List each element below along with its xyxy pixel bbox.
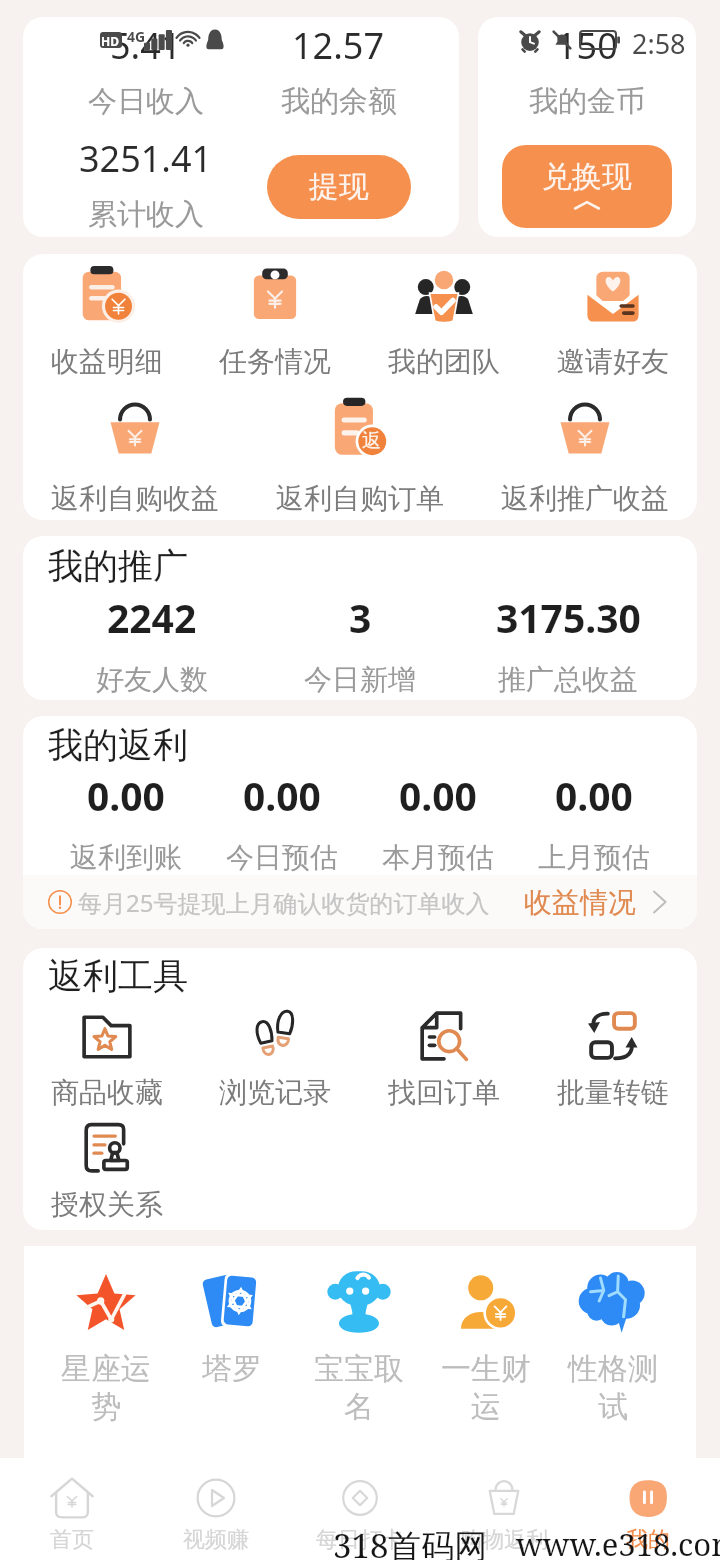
staticText: 我的推广 xyxy=(48,544,188,588)
staticText: 我的 xyxy=(626,1526,670,1554)
button[interactable]: 批量转链 xyxy=(528,1010,697,1110)
button[interactable]: 塔罗 xyxy=(169,1268,295,1388)
staticText: 今日新增 xyxy=(304,662,416,697)
button[interactable]: 我的 xyxy=(576,1458,720,1554)
staticText: 找回订单 xyxy=(388,1075,500,1110)
staticText: 返利自购订单 xyxy=(276,481,444,516)
staticText: 返利工具 xyxy=(48,954,188,998)
other: 购物返利 xyxy=(483,1477,525,1519)
button[interactable]: 性格测试 xyxy=(549,1268,676,1426)
button[interactable]: 邀请好友 xyxy=(528,264,697,379)
staticText: 性格测试 xyxy=(566,1350,660,1426)
staticText: 12.57 xyxy=(292,21,385,70)
staticText: 视频赚 xyxy=(183,1526,249,1554)
staticText: 累计收入 xyxy=(88,196,204,233)
staticText: 推广总收益 xyxy=(498,662,638,697)
staticText: 返 xyxy=(362,429,382,453)
staticText: 返利到账 xyxy=(70,840,182,875)
staticText: 批量转链 xyxy=(557,1075,669,1110)
other: 视频赚 xyxy=(196,1478,236,1518)
staticText: 0.00 xyxy=(243,769,321,822)
staticText: 一生财运 xyxy=(439,1350,533,1426)
staticText: 任务情况 xyxy=(219,344,331,379)
staticText: 318首码网 xyxy=(333,1523,488,1560)
staticText: 今日收入 xyxy=(88,83,204,120)
button[interactable]: 提现 xyxy=(267,155,411,219)
staticText: 5.41 xyxy=(110,21,182,70)
staticText: 我的团队 xyxy=(388,344,500,379)
button[interactable]: 星座运势 xyxy=(43,1268,169,1426)
staticText: 好友人数 xyxy=(96,662,208,697)
button[interactable]: 一生财运 xyxy=(422,1268,549,1426)
button[interactable]: 授权关系 xyxy=(23,1122,191,1222)
button[interactable]: 视频赚 xyxy=(144,1458,288,1554)
staticText: 0.00 xyxy=(87,769,165,822)
staticText: 150 xyxy=(556,21,618,70)
staticText: www.e318.com xyxy=(516,1523,720,1560)
button[interactable]: 150 xyxy=(478,17,696,237)
button[interactable]: 返利推广收益 xyxy=(472,395,697,516)
staticText: 购物返利 xyxy=(460,1526,548,1554)
staticText: 邀请好友 xyxy=(557,344,669,379)
staticText: 今日预估 xyxy=(226,840,338,875)
staticText: 2:58 xyxy=(632,25,686,62)
staticText: 3251.41 xyxy=(79,134,213,183)
button[interactable]: 找回订单 xyxy=(359,1010,528,1110)
staticText: 0.00 xyxy=(399,769,477,822)
staticText: 宝宝取名 xyxy=(312,1350,406,1426)
staticText: 2242 xyxy=(107,591,197,644)
staticText: 提现 xyxy=(309,168,369,206)
button[interactable]: 每日打卡 xyxy=(288,1458,432,1554)
staticText: 我的返利 xyxy=(48,723,188,767)
button[interactable]: 商品收藏 xyxy=(23,1010,191,1110)
button[interactable]: 任务情况 xyxy=(191,264,359,379)
button[interactable]: 宝宝取名 xyxy=(295,1268,422,1426)
staticText: 塔罗 xyxy=(185,1350,279,1388)
staticText: 每日打卡 xyxy=(316,1526,404,1554)
staticText: 上月预估 xyxy=(538,840,650,875)
staticText: 首页 xyxy=(50,1526,94,1554)
button[interactable]: 我的团队 xyxy=(359,264,528,379)
button[interactable]: 浏览记录 xyxy=(191,1010,359,1110)
other: 每日打卡 xyxy=(340,1478,380,1518)
staticText: 4G xyxy=(127,27,146,46)
staticText: 浏览记录 xyxy=(219,1075,331,1110)
button[interactable]: 首页 xyxy=(0,1458,144,1554)
button[interactable]: 每月25号提现上月确认收货的订单收入 xyxy=(48,875,670,929)
other: 首页 xyxy=(50,1476,94,1520)
button[interactable]: 购物返利 xyxy=(432,1458,576,1554)
staticText: 返利推广收益 xyxy=(501,481,669,516)
staticText: 我的余额 xyxy=(281,83,397,120)
staticText: 授权关系 xyxy=(51,1187,163,1222)
staticText: 我的金币 xyxy=(529,83,645,120)
button[interactable]: 返 xyxy=(247,395,472,516)
staticText: 3 xyxy=(349,591,372,644)
staticText: HD xyxy=(101,33,119,49)
staticText: 每月25号提现上月确认收货的订单收入 xyxy=(78,886,490,919)
staticText: 返利自购收益 xyxy=(51,481,219,516)
staticText: 兑换现 xyxy=(542,158,632,196)
button[interactable]: 收益明细 xyxy=(23,264,191,379)
button[interactable]: 返利自购收益 xyxy=(23,395,247,516)
staticText: 收益情况 xyxy=(524,885,636,920)
staticText: 3175.30 xyxy=(496,591,641,644)
staticText: 本月预估 xyxy=(382,840,494,875)
staticText: 收益明细 xyxy=(51,344,163,379)
staticText: 商品收藏 xyxy=(51,1075,163,1110)
staticText: 星座运势 xyxy=(59,1350,153,1426)
staticText: 0.00 xyxy=(555,769,633,822)
button[interactable]: 兑换现 xyxy=(502,145,672,228)
other: 我的 xyxy=(627,1477,669,1519)
button[interactable]: 5.41 xyxy=(23,17,459,237)
